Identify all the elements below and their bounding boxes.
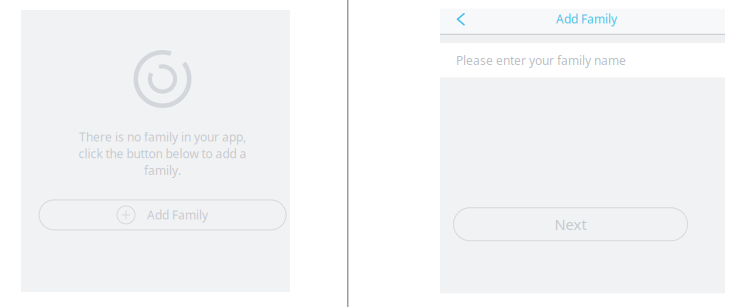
staticText: click the button below to add a <box>78 146 246 162</box>
staticText: Please enter your family name <box>456 52 626 68</box>
button[interactable]: Back <box>440 9 480 34</box>
staticText: Add Family <box>147 207 208 223</box>
button[interactable]: Add Family <box>38 199 286 230</box>
staticText: Next <box>554 214 586 234</box>
button[interactable]: Next <box>453 207 688 241</box>
staticText: There is no family in your app, <box>79 129 246 145</box>
staticText: family. <box>144 162 181 178</box>
staticText: Add Family <box>556 11 617 27</box>
